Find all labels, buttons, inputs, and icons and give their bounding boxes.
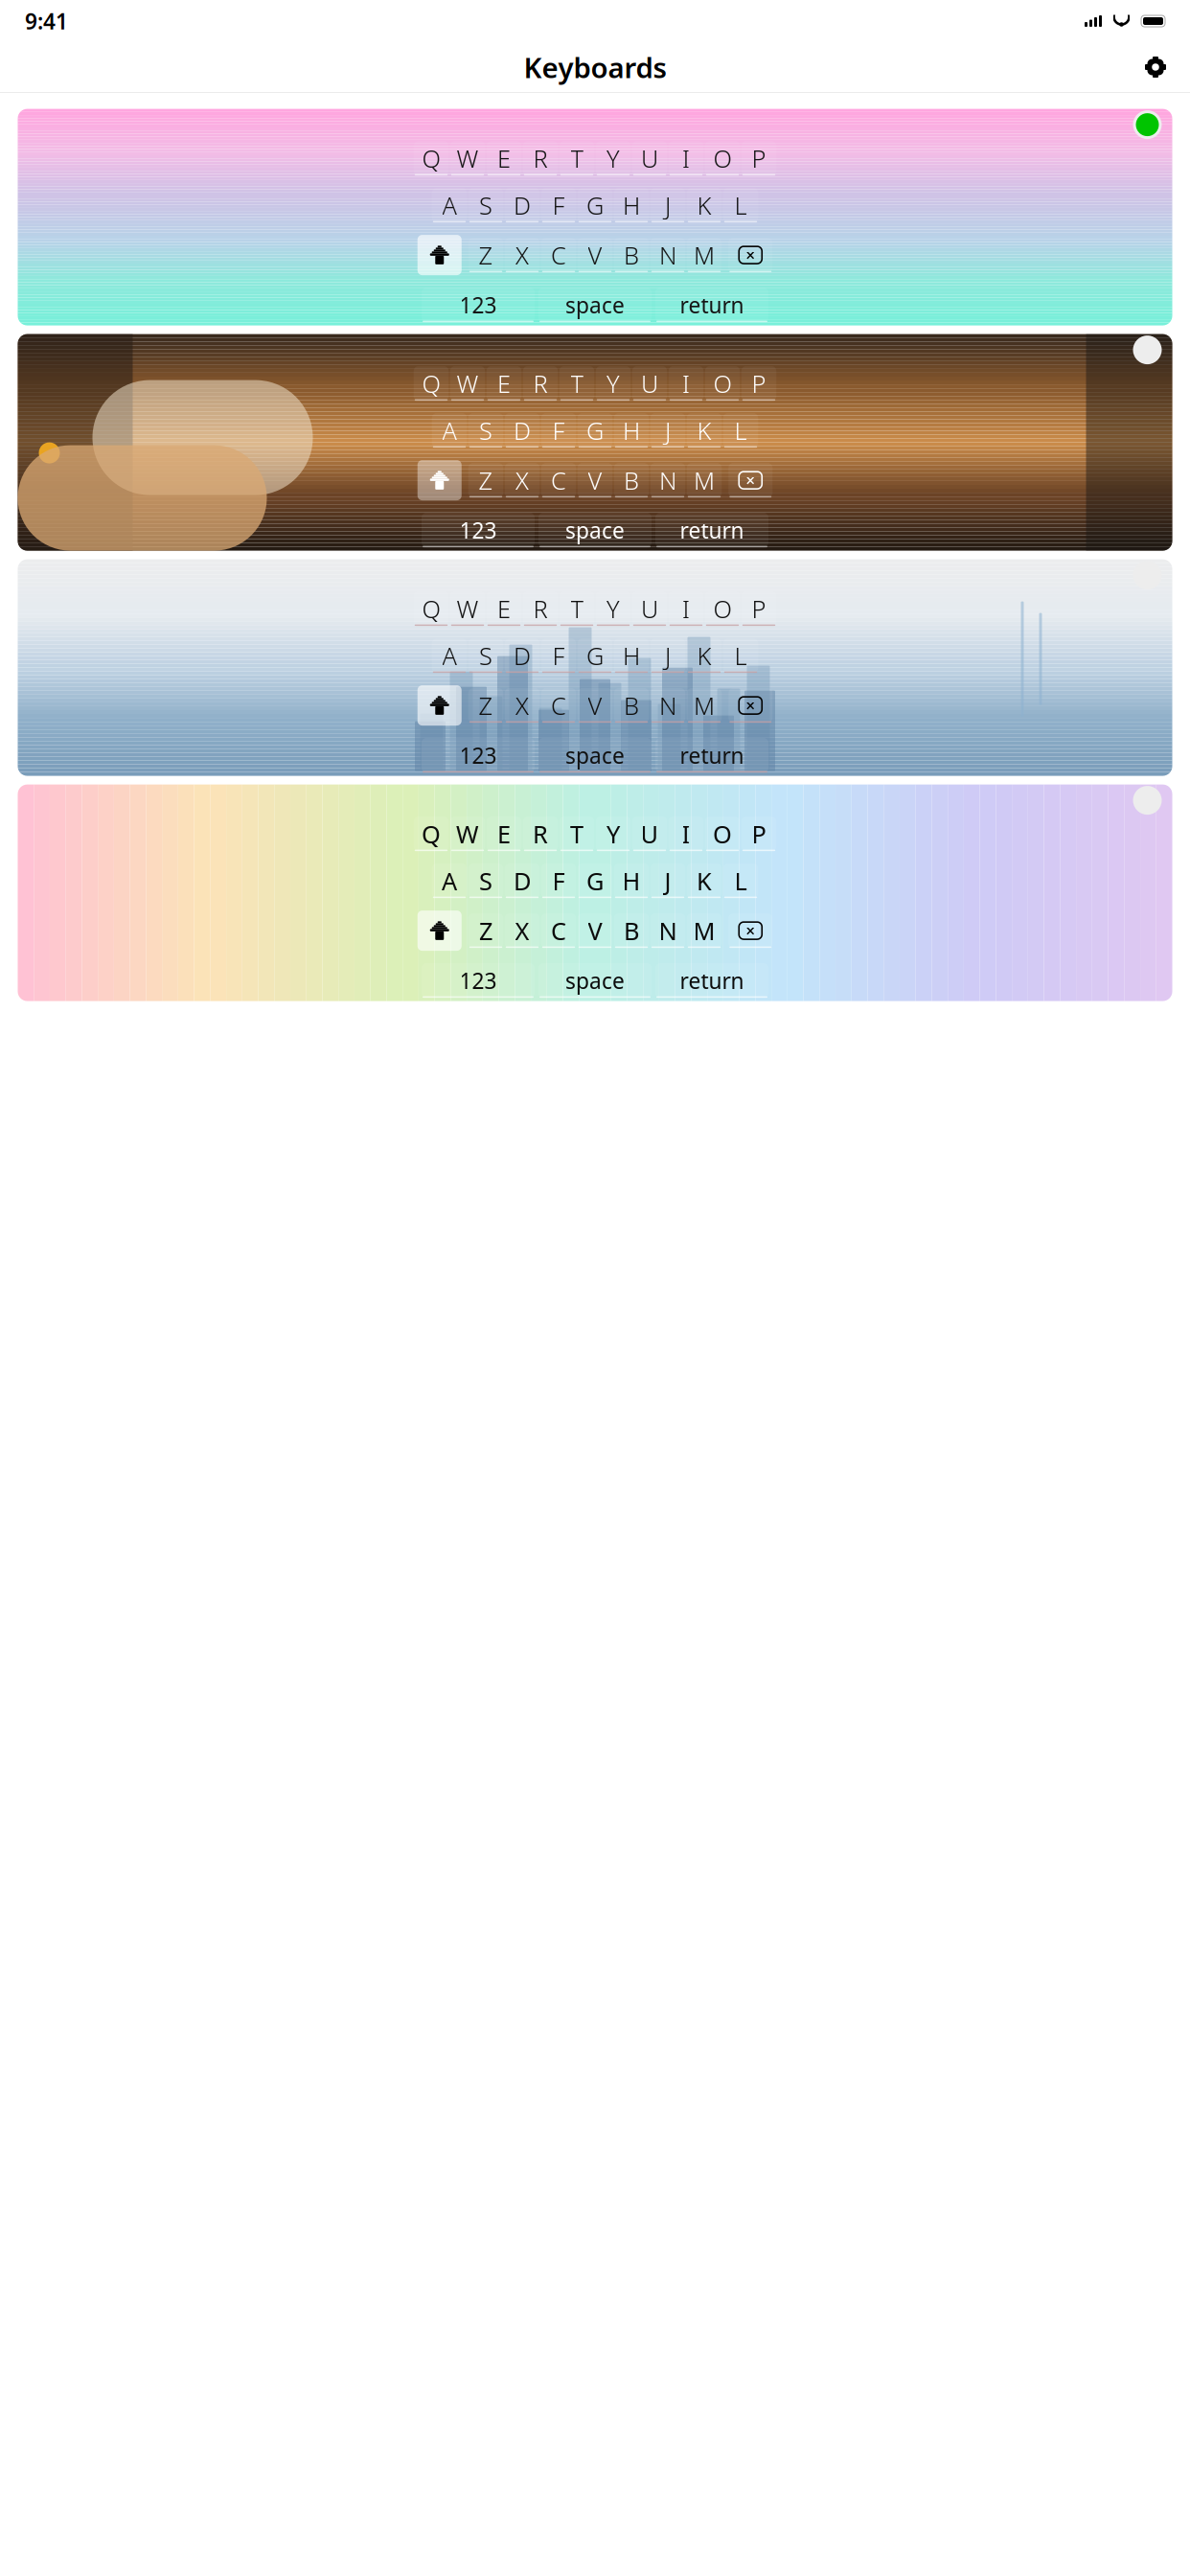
- staticText: L: [734, 414, 747, 446]
- staticText: I: [682, 818, 690, 850]
- button[interactable]: Delete: [728, 913, 772, 948]
- staticText: I: [682, 593, 690, 625]
- staticText: Y: [606, 367, 620, 400]
- staticText: T: [571, 367, 583, 400]
- staticText: K: [697, 414, 711, 446]
- staticText: D: [514, 189, 531, 221]
- staticText: G: [586, 639, 604, 672]
- staticText: ×: [746, 694, 755, 716]
- staticText: A: [442, 414, 457, 446]
- staticText: E: [497, 142, 511, 174]
- staticText: Z: [479, 464, 493, 496]
- staticText: F: [552, 639, 565, 672]
- staticText: W: [457, 367, 479, 400]
- button[interactable]: Delete: [728, 238, 772, 272]
- staticText: Q: [422, 593, 440, 625]
- staticText: R: [533, 593, 548, 625]
- staticText: T: [570, 818, 584, 850]
- staticText: G: [586, 189, 604, 221]
- staticText: Z: [479, 915, 492, 947]
- button[interactable]: Settings: [1133, 47, 1178, 87]
- staticText: F: [552, 865, 565, 897]
- staticText: P: [752, 593, 766, 625]
- button[interactable]: Pastel gradient keyboard, selected: [18, 109, 1172, 325]
- staticText: space: [565, 966, 625, 995]
- staticText: X: [515, 464, 529, 496]
- staticText: N: [659, 464, 676, 496]
- staticText: 123: [459, 290, 497, 319]
- button[interactable]: Rainbow serif keyboard: [18, 784, 1172, 1001]
- staticText: C: [551, 239, 566, 271]
- staticText: V: [588, 689, 602, 722]
- staticText: L: [734, 639, 747, 672]
- button[interactable]: Shift: [418, 235, 462, 275]
- staticText: N: [659, 239, 676, 271]
- staticText: X: [515, 239, 529, 271]
- staticText: Q: [422, 818, 441, 850]
- staticText: R: [533, 818, 548, 850]
- staticText: M: [694, 689, 715, 722]
- staticText: D: [514, 414, 531, 446]
- staticText: I: [682, 142, 690, 174]
- staticText: H: [623, 414, 640, 446]
- staticText: O: [713, 818, 732, 850]
- staticText: G: [586, 865, 604, 897]
- staticText: L: [734, 189, 747, 221]
- button[interactable]: Delete: [728, 463, 772, 497]
- staticText: H: [622, 865, 641, 897]
- staticText: E: [497, 367, 511, 400]
- staticText: J: [665, 639, 671, 672]
- staticText: N: [659, 689, 676, 722]
- staticText: R: [533, 142, 548, 174]
- button[interactable]: Shift: [418, 460, 462, 500]
- staticText: H: [623, 189, 640, 221]
- staticText: 123: [459, 741, 497, 770]
- staticText: T: [571, 593, 583, 625]
- button[interactable]: Delete: [728, 688, 772, 723]
- staticText: O: [713, 142, 732, 174]
- staticText: B: [624, 464, 639, 496]
- staticText: J: [665, 189, 671, 221]
- staticText: O: [713, 593, 732, 625]
- staticText: W: [457, 593, 479, 625]
- staticText: V: [588, 239, 602, 271]
- staticText: Y: [606, 818, 620, 850]
- staticText: G: [586, 414, 604, 446]
- staticText: space: [565, 741, 625, 770]
- staticText: J: [665, 414, 671, 446]
- staticText: S: [479, 189, 492, 221]
- button[interactable]: Cat photo keyboard: [18, 334, 1172, 551]
- staticText: L: [734, 865, 747, 897]
- staticText: D: [514, 639, 531, 672]
- staticText: I: [682, 367, 690, 400]
- staticText: Y: [606, 593, 620, 625]
- button[interactable]: City skyline keyboard: [18, 559, 1172, 776]
- staticText: T: [571, 142, 583, 174]
- staticText: C: [551, 689, 566, 722]
- button[interactable]: Shift: [418, 685, 462, 726]
- staticText: C: [551, 464, 566, 496]
- staticText: M: [693, 915, 715, 947]
- button[interactable]: Shift: [418, 911, 462, 951]
- staticText: U: [641, 593, 658, 625]
- staticText: E: [497, 818, 511, 850]
- staticText: W: [456, 818, 479, 850]
- staticText: P: [752, 818, 766, 850]
- staticText: ×: [746, 244, 755, 266]
- staticText: ×: [746, 920, 755, 942]
- staticText: S: [479, 865, 492, 897]
- staticText: A: [442, 865, 457, 897]
- staticText: Y: [606, 142, 620, 174]
- staticText: V: [588, 464, 602, 496]
- staticText: B: [624, 915, 639, 947]
- staticText: P: [752, 367, 766, 400]
- staticText: S: [479, 414, 492, 446]
- staticText: A: [442, 189, 457, 221]
- staticText: K: [697, 189, 711, 221]
- staticText: Keyboards: [524, 48, 666, 86]
- staticText: ×: [746, 469, 755, 491]
- staticText: space: [565, 290, 625, 319]
- staticText: N: [659, 915, 677, 947]
- staticText: 123: [459, 516, 497, 544]
- staticText: Z: [479, 239, 493, 271]
